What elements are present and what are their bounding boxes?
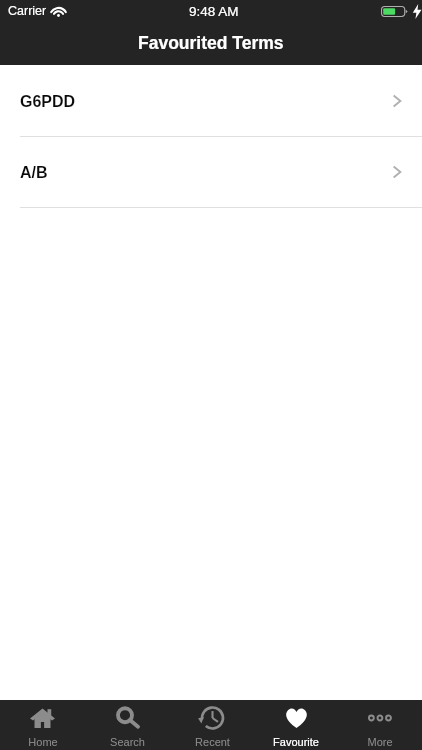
button[interactable]: G6PDD (0, 66, 422, 137)
staticText: More (367, 736, 393, 748)
staticText: Recent (195, 736, 230, 748)
button[interactable]: Favourite (254, 700, 338, 750)
staticText: Search (110, 736, 145, 748)
staticText: 9:48 AM (189, 4, 239, 19)
staticText: Favourited Terms (138, 33, 284, 53)
button[interactable]: Search (85, 700, 170, 750)
staticText: Home (28, 736, 58, 748)
other: Battery charging (381, 6, 408, 17)
button[interactable]: Home (0, 700, 85, 750)
button[interactable]: Recent (170, 700, 254, 750)
staticText: Favourite (273, 736, 319, 748)
other: Wi-Fi signal (51, 6, 66, 17)
staticText: Carrier (8, 4, 47, 18)
staticText: G6PDD (20, 93, 76, 111)
button[interactable]: A/B (0, 137, 422, 208)
staticText: A/B (20, 164, 48, 182)
button[interactable]: More (338, 700, 422, 750)
